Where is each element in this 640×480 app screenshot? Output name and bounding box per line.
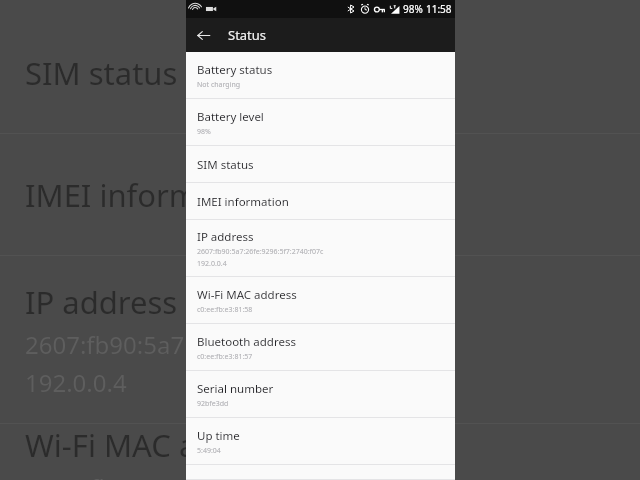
staticText: SIM status [25,52,178,94]
button[interactable]: Wi-Fi MAC address [186,277,455,324]
staticText: 192.0.0.4 [25,366,127,399]
button[interactable]: Bluetooth address [186,324,455,371]
staticText: c0:ee:fb:e3:81:57 [197,352,253,362]
button[interactable] [186,465,455,480]
button[interactable]: Battery status [186,52,455,99]
staticText: Wi-Fi MAC address [25,424,294,466]
staticText: Battery level [197,109,264,125]
button[interactable]: IMEI information [186,183,455,220]
staticText: IMEI information [25,174,273,216]
staticText: IP address [25,281,178,323]
staticText: SIM status [197,157,254,173]
staticText: Up time [197,428,240,444]
staticText: 2607:fb90:5a7:26fe: [25,328,247,361]
staticText: 11:58 [426,2,452,16]
staticText: IP address [197,229,254,245]
staticText: c0:ee:fb:e3:81:58 [25,471,215,480]
button[interactable]: Battery level [186,99,455,146]
button[interactable]: Serial number [186,371,455,418]
button[interactable]: Up time [186,418,455,465]
staticText: 98% [403,2,423,16]
staticText: Wi-Fi MAC address [197,287,297,303]
staticText: Bluetooth address [197,334,296,350]
staticText: Serial number [197,381,274,397]
staticText: 98% [197,127,211,137]
button[interactable]: SIM status [186,146,455,183]
staticText: Not charging [197,80,241,90]
button[interactable]: Back [186,18,220,52]
staticText: Status [228,26,267,44]
staticText: c0:ee:fb:e3:81:58 [197,305,253,315]
staticText: 92bfe3dd [197,399,229,409]
staticText: IMEI information [197,194,289,210]
staticText: 5:49:04 [197,446,221,456]
staticText: 192.0.0.4 [197,259,227,269]
button[interactable]: IP address [186,220,455,277]
staticText: Battery status [197,62,273,78]
staticText: 2607:fb90:5a7:26fe:9296:5f7:2740:f07c [197,247,324,257]
